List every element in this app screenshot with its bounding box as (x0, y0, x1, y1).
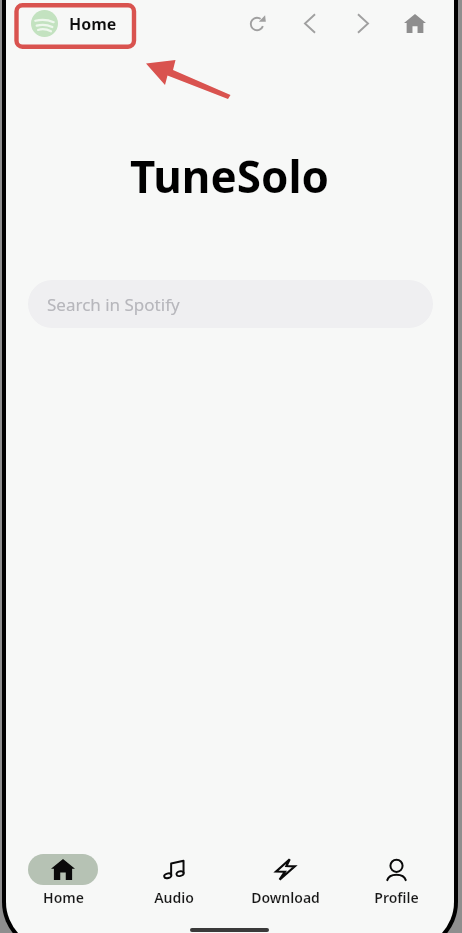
staticText: Home (69, 13, 117, 35)
button[interactable]: Refresh (239, 6, 274, 41)
staticText: Search in Spotify (47, 293, 180, 316)
staticText: Home (43, 888, 84, 907)
staticText: Download (251, 888, 320, 907)
button[interactable]: Audio (120, 832, 228, 907)
button[interactable]: Home page (397, 6, 432, 41)
button[interactable]: Download (231, 832, 339, 907)
button[interactable]: Home (31, 10, 117, 37)
button[interactable]: Search in Spotify (28, 280, 433, 328)
staticText: Profile (374, 888, 419, 907)
button[interactable]: Forward (345, 6, 380, 41)
button[interactable]: Home (9, 832, 117, 907)
button[interactable]: Profile (342, 832, 450, 907)
staticText: TuneSolo (6, 146, 453, 206)
staticText: Audio (154, 888, 194, 907)
button[interactable]: Back (292, 6, 327, 41)
